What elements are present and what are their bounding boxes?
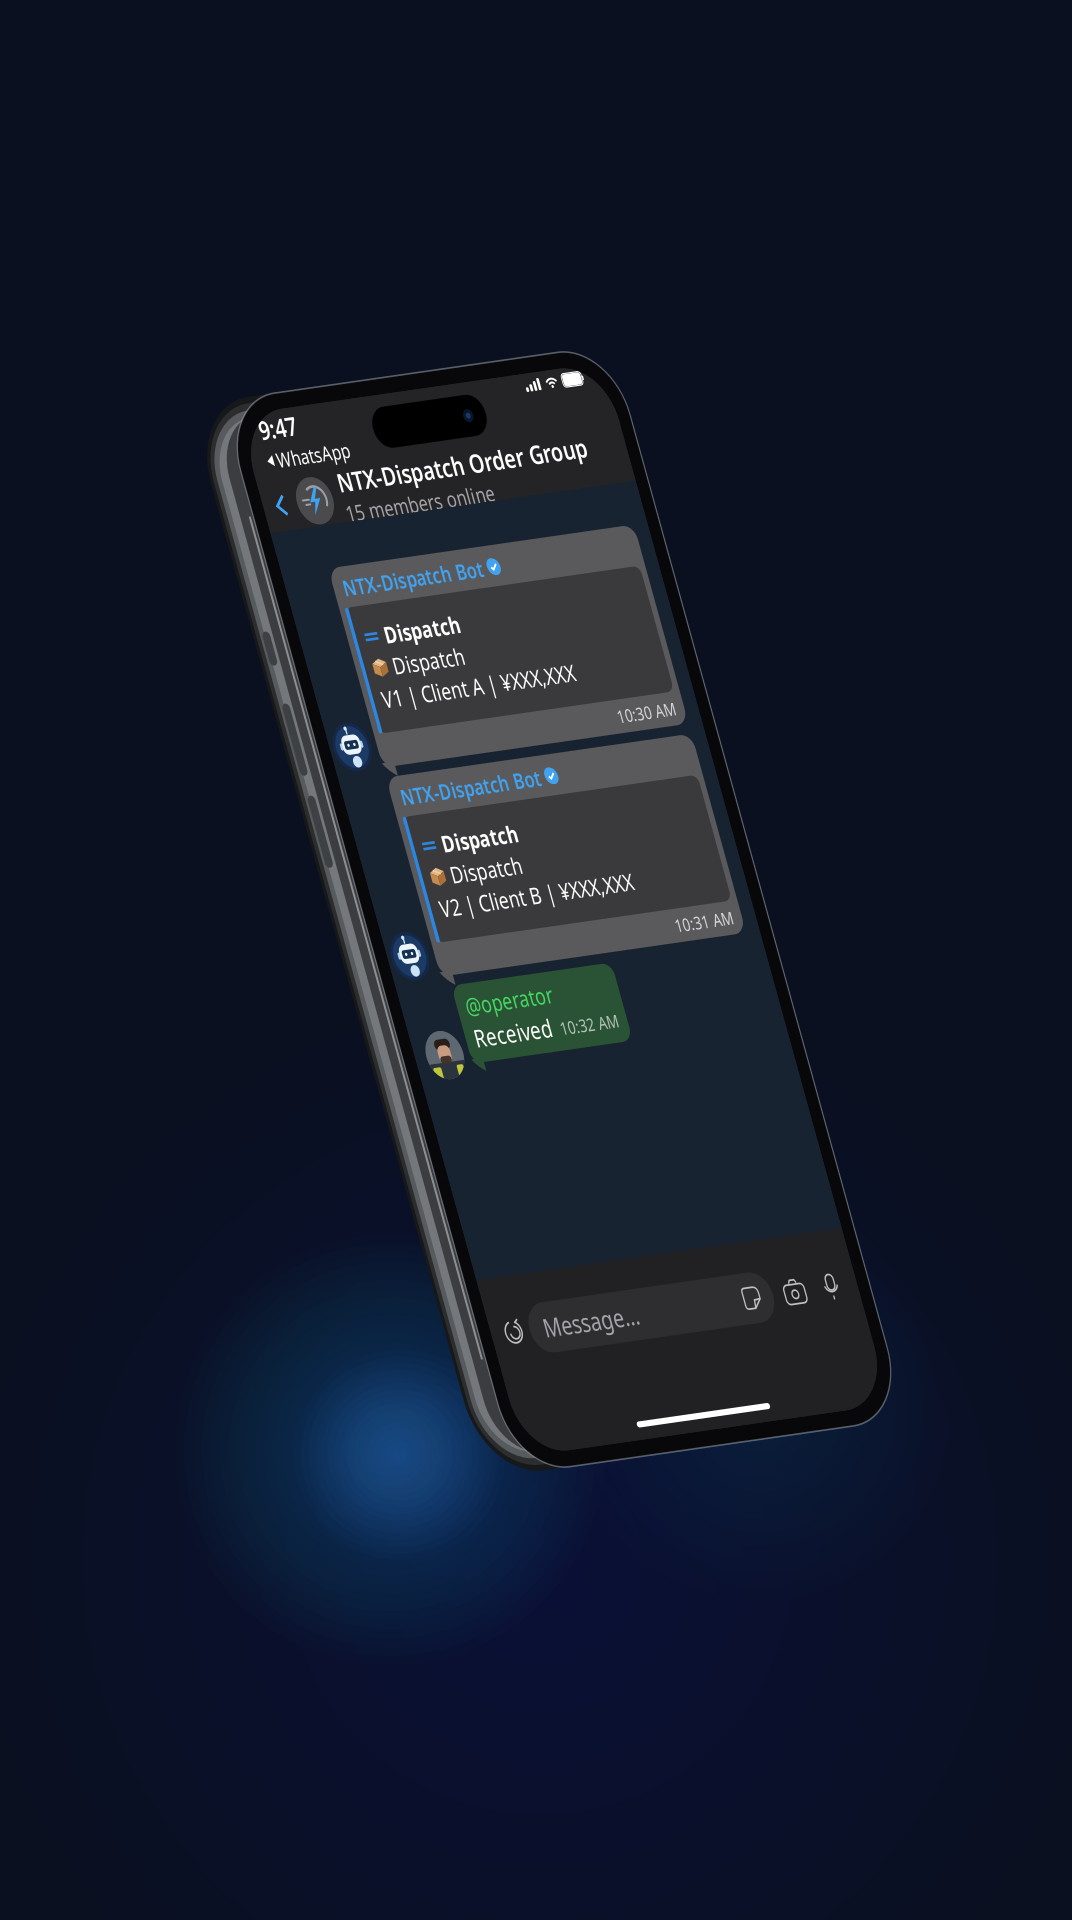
button[interactable]: Camera	[383, 904, 414, 935]
staticText: 10:31 AM	[374, 540, 451, 563]
button[interactable]: Voice message	[431, 904, 462, 935]
staticText: 10:32 AM	[193, 623, 270, 646]
staticText: NTX-Dispatch Bot	[72, 376, 256, 404]
staticText: V2 | Client B | ¥XXX,XXX	[83, 488, 337, 518]
button[interactable]: Message…	[50, 895, 370, 945]
